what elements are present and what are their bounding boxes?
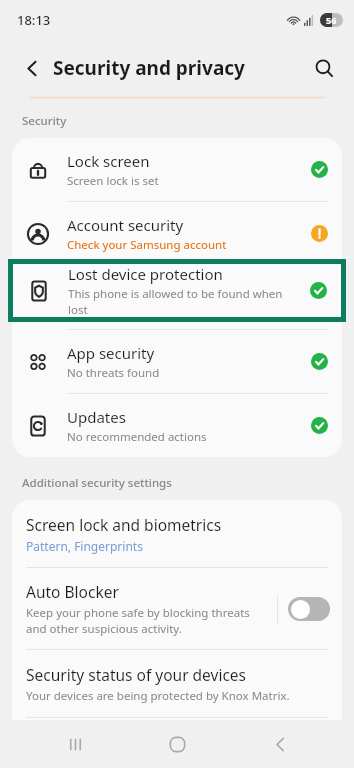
button[interactable]: Lost device protection: [12, 266, 342, 329]
staticText: Lock screen: [67, 151, 150, 171]
button[interactable]: Recents: [47, 720, 103, 768]
button[interactable]: Security status of your devices: [12, 650, 342, 717]
staticText: Pattern, Fingerprints: [26, 538, 143, 554]
button[interactable]: Auto Blocker: [12, 568, 342, 649]
staticText: Screen lock is set: [67, 173, 159, 189]
staticText: Check your Samsung account: [67, 237, 227, 253]
button[interactable]: Back: [12, 48, 52, 88]
staticText: Security status of your devices: [26, 664, 247, 685]
button[interactable]: Auto Blocker toggle: [288, 597, 330, 621]
staticText: Security: [22, 113, 67, 129]
button[interactable]: Home: [149, 720, 205, 768]
staticText: Additional security settings: [22, 475, 172, 491]
staticText: This phone is allowed to be found when l…: [68, 286, 302, 317]
staticText: Security and privacy: [53, 55, 245, 81]
button[interactable]: Lock screen: [12, 138, 342, 201]
staticText: Keep your phone safe by blocking threats…: [26, 605, 267, 636]
staticText: Your devices are being protected by Knox…: [26, 688, 290, 704]
staticText: No threats found: [67, 365, 160, 381]
staticText: No recommended actions: [67, 429, 207, 445]
staticText: 18:13: [17, 11, 51, 29]
staticText: App security: [67, 343, 155, 363]
staticText: Account security: [67, 215, 184, 235]
button[interactable]: Account security: [12, 202, 342, 265]
button[interactable]: Screen lock and biometrics: [12, 500, 342, 567]
staticText: Lost device protection: [68, 264, 223, 284]
button[interactable]: Back: [252, 720, 308, 768]
button[interactable]: App security: [12, 330, 342, 393]
staticText: Screen lock and biometrics: [26, 514, 222, 535]
button[interactable]: Search: [304, 48, 344, 88]
staticText: Auto Blocker: [26, 581, 119, 602]
button[interactable]: Lost device protection: [13, 264, 341, 317]
staticText: Updates: [67, 407, 126, 427]
staticText: 56: [326, 14, 337, 26]
staticText: This phone is allowed to be found when l…: [67, 293, 303, 325]
staticText: Lost device protection: [67, 271, 222, 291]
button[interactable]: Updates: [12, 394, 342, 457]
